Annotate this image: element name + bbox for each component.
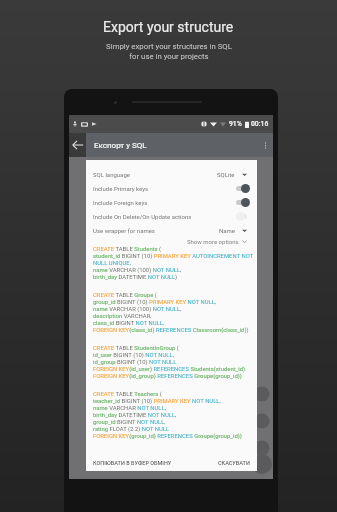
staticText: birth_day DATETIME NOT NULL, [93, 412, 177, 419]
staticText: rating FLOAT (2.2) NOT NULL [93, 426, 170, 433]
staticText: teacher_id BIGINT (10) PRIMARY KEY NOT N… [93, 398, 221, 405]
staticText: FOREIGN KEY(group_id) REFERENCES Groupe(… [93, 433, 242, 440]
staticText: SQL language [93, 171, 130, 178]
button[interactable]: SQL language [86, 167, 257, 181]
button[interactable]: Include On Delete/On Update actions [86, 209, 257, 223]
staticText: Use wrapper for names [93, 227, 155, 234]
staticText: 91% [229, 120, 242, 128]
staticText: birth_day DATETIME NOT NULL) [93, 274, 178, 281]
staticText: name VARCHAR (100) NOT NULL, [93, 306, 182, 313]
staticText: КОПІЮВАТИ В БУФЕР ОБМІНУ [93, 460, 172, 466]
staticText: student_id BIGINT (10) PRIMARY KEY AUTOI… [93, 253, 254, 260]
button[interactable]: Back [69, 133, 86, 157]
button[interactable]: Use wrapper for names [86, 223, 257, 237]
button[interactable]: More options [258, 133, 273, 157]
button[interactable]: КОПІЮВАТИ В БУФЕР ОБМІНУ [91, 457, 174, 469]
staticText: Include Primary keys [93, 185, 149, 192]
button[interactable]: Include Foreign keys [86, 195, 257, 209]
staticText: CREATE TABLE Students ( [93, 246, 162, 253]
staticText: 00:16 [251, 120, 269, 128]
staticText: Export your structure [103, 19, 234, 35]
staticText: Експорт у SQL [94, 141, 147, 150]
staticText: Include On Delete/On Update actions [93, 213, 192, 220]
staticText: Show more options [187, 238, 239, 245]
button[interactable]: СКАСУВАТИ [216, 457, 252, 469]
staticText: class_id BIGINT NOT NULL, [93, 320, 165, 327]
button[interactable]: Show more options [86, 237, 257, 245]
staticText: CREATE TABLE StudentInGroup ( [93, 345, 179, 352]
staticText: FOREIGN KEY(class_id) REFERENCES Classro… [93, 327, 249, 334]
staticText: id_group BIGINT (10) NOT NULL [93, 359, 177, 366]
staticText: Simply export your structures in SQL for… [106, 42, 232, 61]
staticText: FOREIGN KEY(id_user) REFERENCES Students… [93, 366, 246, 373]
staticText: group_id BIGINT NOT NULL, [93, 419, 166, 426]
staticText: Include Foreign keys [93, 199, 148, 206]
staticText: group_id BIGINT (10) PRIMARY KEY NOT NUL… [93, 299, 217, 306]
staticText: СКАСУВАТИ [218, 460, 250, 466]
staticText: CREATE TABLE Teachers ( [93, 391, 162, 398]
staticText: Name [219, 227, 235, 234]
staticText: name VARCHAR NOT NULL, [93, 405, 166, 412]
staticText: id_user BIGINT (10) NOT NULL, [93, 352, 174, 359]
staticText: CREATE TABLE Groupe ( [93, 292, 157, 299]
staticText: name VARCHAR (100) NOT NULL, [93, 267, 182, 274]
staticText: NULL UNIQUE, [93, 260, 131, 267]
staticText: description VARCHAR, [93, 313, 152, 320]
staticText: FOREIGN KEY(id_group) REFERENCES Groupe(… [93, 373, 242, 380]
button[interactable]: Include Primary keys [86, 181, 257, 195]
staticText: SQLite [217, 171, 235, 178]
